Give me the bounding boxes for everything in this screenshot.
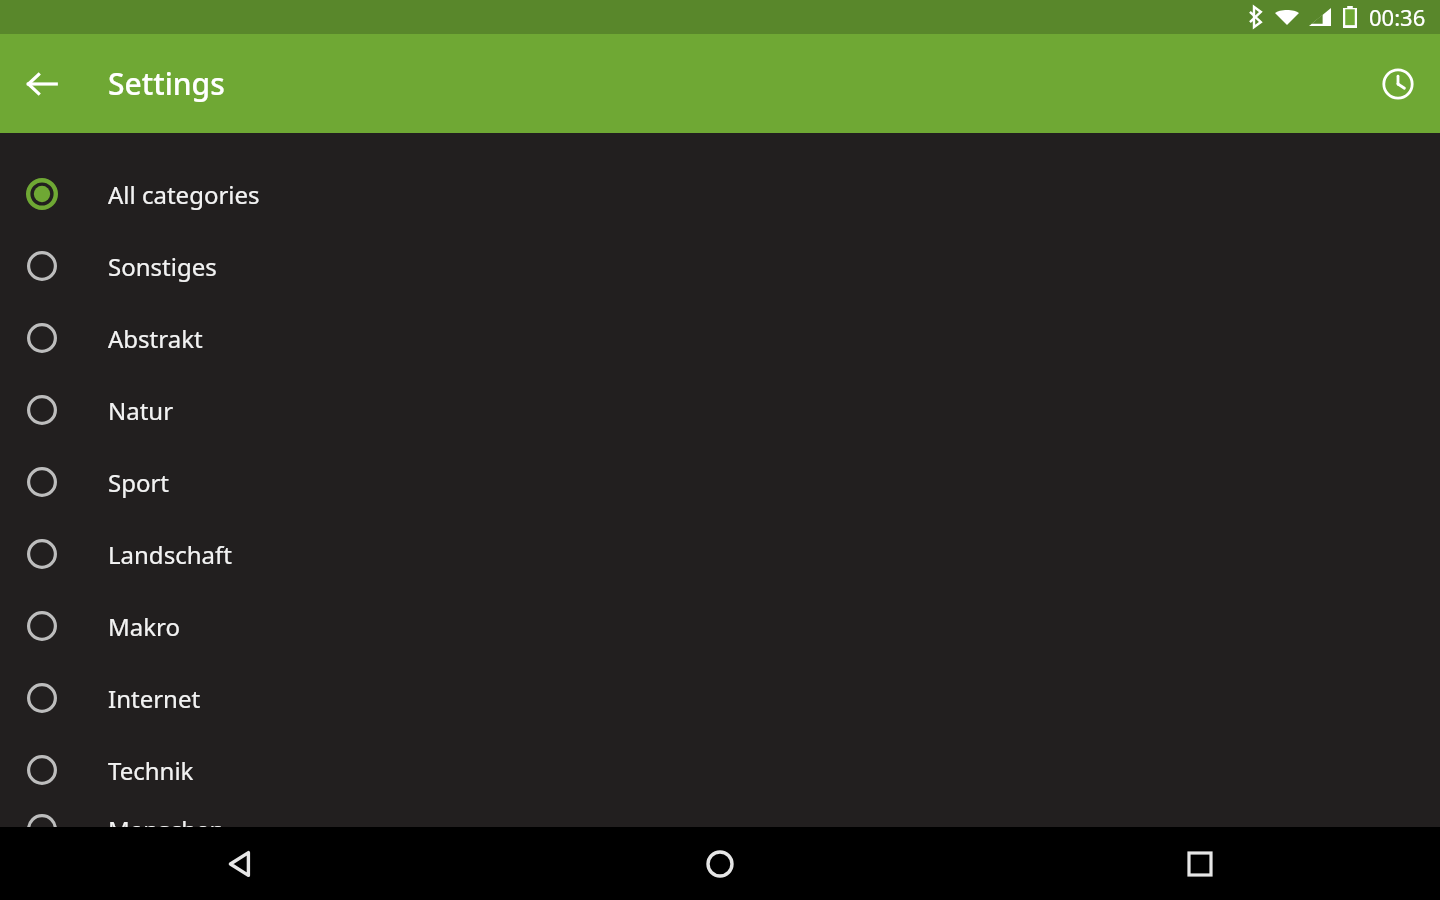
button[interactable]: Natur: [0, 374, 1440, 446]
staticText: Sonstiges: [108, 250, 217, 283]
button[interactable]: Internet: [0, 662, 1440, 734]
staticText: 00:36: [1369, 2, 1426, 32]
button[interactable]: Makro: [0, 590, 1440, 662]
button[interactable]: History: [1370, 56, 1426, 112]
button[interactable]: Recents: [960, 827, 1440, 900]
staticText: All categories: [108, 178, 260, 211]
button[interactable]: Landschaft: [0, 518, 1440, 590]
button[interactable]: Back: [0, 827, 480, 900]
staticText: Technik: [108, 754, 194, 787]
button[interactable]: Abstrakt: [0, 302, 1440, 374]
staticText: Internet: [108, 682, 201, 715]
staticText: Settings: [108, 63, 225, 104]
staticText: Abstrakt: [108, 322, 203, 355]
staticText: Sport: [108, 466, 170, 499]
button[interactable]: Sport: [0, 446, 1440, 518]
staticText: Natur: [108, 394, 174, 427]
button[interactable]: Technik: [0, 734, 1440, 806]
staticText: Makro: [108, 610, 180, 643]
staticText: Menschen: [108, 813, 225, 827]
button[interactable]: All categories: [0, 158, 1440, 230]
button[interactable]: Home: [480, 827, 960, 900]
button[interactable]: Back: [14, 56, 70, 112]
staticText: Landschaft: [108, 538, 232, 571]
button[interactable]: Menschen: [0, 806, 1440, 827]
button[interactable]: Sonstiges: [0, 230, 1440, 302]
